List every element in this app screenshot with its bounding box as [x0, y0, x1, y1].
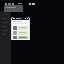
button[interactable]: [0, 11, 11, 64]
button[interactable]: Device preview: [11, 17, 30, 40]
button[interactable]: [13, 31, 28, 35]
button[interactable]: [13, 17, 28, 20]
button[interactable]: [13, 36, 28, 39]
button[interactable]: [13, 26, 28, 30]
button[interactable]: Header panel: [4, 5, 23, 12]
